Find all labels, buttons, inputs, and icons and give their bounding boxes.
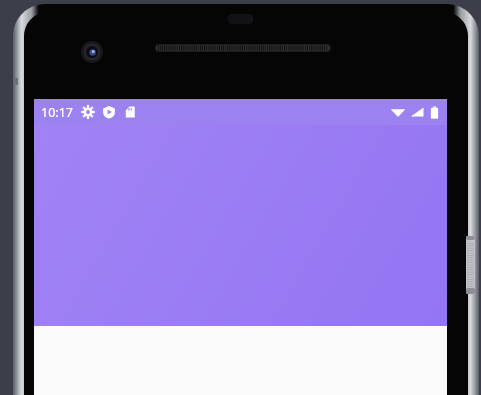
staticText: 10:17 [41,104,73,121]
button[interactable]: SD card [123,105,137,119]
button[interactable]: Settings [81,105,95,119]
button[interactable]: Play Protect [102,105,116,119]
